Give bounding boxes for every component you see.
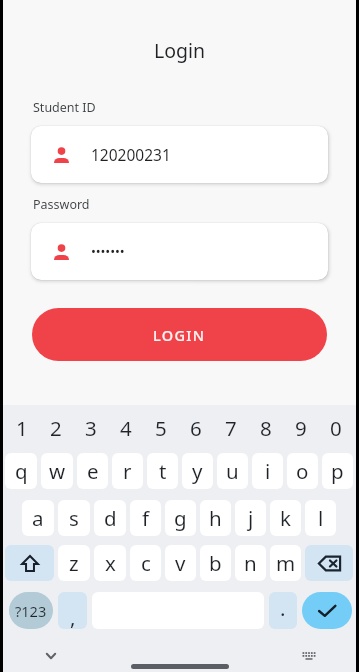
button[interactable]: r — [112, 453, 143, 489]
button[interactable]: 7 — [213, 405, 248, 451]
staticText: e — [87, 457, 99, 485]
staticText: , — [70, 603, 76, 629]
staticText: f — [142, 504, 150, 532]
staticText: 8 — [260, 414, 272, 442]
button[interactable]: b — [200, 545, 231, 581]
staticText: p — [331, 457, 344, 485]
button[interactable]: m — [270, 545, 301, 581]
staticText: 120200231 — [91, 144, 171, 165]
staticText: b — [209, 549, 222, 577]
staticText: ?123 — [15, 601, 47, 621]
staticText: 7 — [225, 414, 237, 442]
staticText: 2 — [50, 414, 62, 442]
staticText: 3 — [85, 414, 97, 442]
button[interactable]: 8 — [248, 405, 283, 451]
staticText: 4 — [120, 414, 132, 442]
button[interactable]: 3 — [73, 405, 108, 451]
button[interactable]: . — [269, 592, 297, 629]
button[interactable]: l — [305, 500, 336, 536]
button[interactable]: n — [235, 545, 266, 581]
button[interactable]: v — [165, 545, 196, 581]
button[interactable]: w — [41, 453, 73, 489]
button[interactable]: ?123 — [9, 592, 53, 629]
staticText: LOGIN — [153, 325, 206, 345]
button[interactable]: z — [58, 545, 90, 581]
button[interactable]: k — [270, 500, 301, 536]
staticText: 0 — [330, 414, 342, 442]
staticText: y — [192, 457, 203, 485]
staticText: g — [174, 504, 187, 532]
button[interactable]: 6 — [178, 405, 213, 451]
button[interactable]: 120200231 — [31, 126, 328, 183]
button[interactable]: o — [287, 453, 318, 489]
staticText: q — [15, 457, 28, 485]
staticText: ••••••• — [91, 242, 125, 260]
staticText: i — [265, 457, 271, 485]
staticText: c — [141, 549, 151, 577]
staticText: w — [49, 457, 66, 485]
button[interactable]: h — [200, 500, 231, 536]
button[interactable]: j — [235, 500, 266, 536]
button[interactable]: 5 — [143, 405, 178, 451]
button[interactable]: Shift — [5, 545, 54, 581]
staticText: . — [280, 594, 286, 622]
staticText: r — [123, 457, 132, 485]
staticText: m — [276, 549, 296, 577]
button[interactable]: c — [130, 545, 161, 581]
button[interactable]: Backspace — [305, 545, 353, 581]
staticText: k — [280, 504, 291, 532]
staticText: s — [69, 504, 79, 532]
staticText: 6 — [190, 414, 202, 442]
staticText: a — [32, 504, 44, 532]
button[interactable]: Switch keyboard — [296, 643, 322, 669]
staticText: Student ID — [33, 99, 96, 116]
staticText: 5 — [155, 414, 167, 442]
button[interactable]: 0 — [318, 405, 353, 451]
button[interactable]: e — [77, 453, 108, 489]
button[interactable]: g — [165, 500, 196, 536]
staticText: t — [159, 457, 167, 485]
button[interactable]: 2 — [39, 405, 73, 451]
button[interactable]: a — [22, 500, 54, 536]
staticText: n — [244, 549, 257, 577]
button[interactable]: , — [58, 592, 87, 629]
button[interactable]: t — [147, 453, 178, 489]
staticText: d — [104, 504, 117, 532]
button[interactable]: q — [5, 453, 37, 489]
button[interactable]: Hide keyboard — [38, 643, 64, 669]
button[interactable]: s — [58, 500, 90, 536]
staticText: l — [318, 504, 324, 532]
button[interactable]: y — [182, 453, 213, 489]
staticText: 1 — [16, 414, 28, 442]
button[interactable]: p — [322, 453, 353, 489]
staticText: o — [296, 457, 309, 485]
staticText: u — [226, 457, 239, 485]
button[interactable]: 1 — [5, 405, 39, 451]
button[interactable]: u — [217, 453, 248, 489]
button[interactable]: LOGIN — [32, 308, 327, 361]
staticText: Login — [154, 37, 206, 64]
button[interactable]: ••••••• — [31, 223, 328, 280]
staticText: Password — [33, 196, 90, 213]
staticText: x — [105, 549, 116, 577]
button[interactable]: 4 — [108, 405, 143, 451]
button[interactable]: i — [252, 453, 283, 489]
staticText: h — [209, 504, 222, 532]
button[interactable]: 9 — [283, 405, 318, 451]
staticText: 9 — [295, 414, 307, 442]
button[interactable]: x — [94, 545, 126, 581]
button[interactable]: f — [130, 500, 161, 536]
staticText: v — [175, 549, 186, 577]
staticText: z — [69, 549, 79, 577]
button[interactable]: Enter — [302, 592, 352, 629]
button[interactable]: d — [94, 500, 126, 536]
staticText: j — [248, 504, 254, 532]
